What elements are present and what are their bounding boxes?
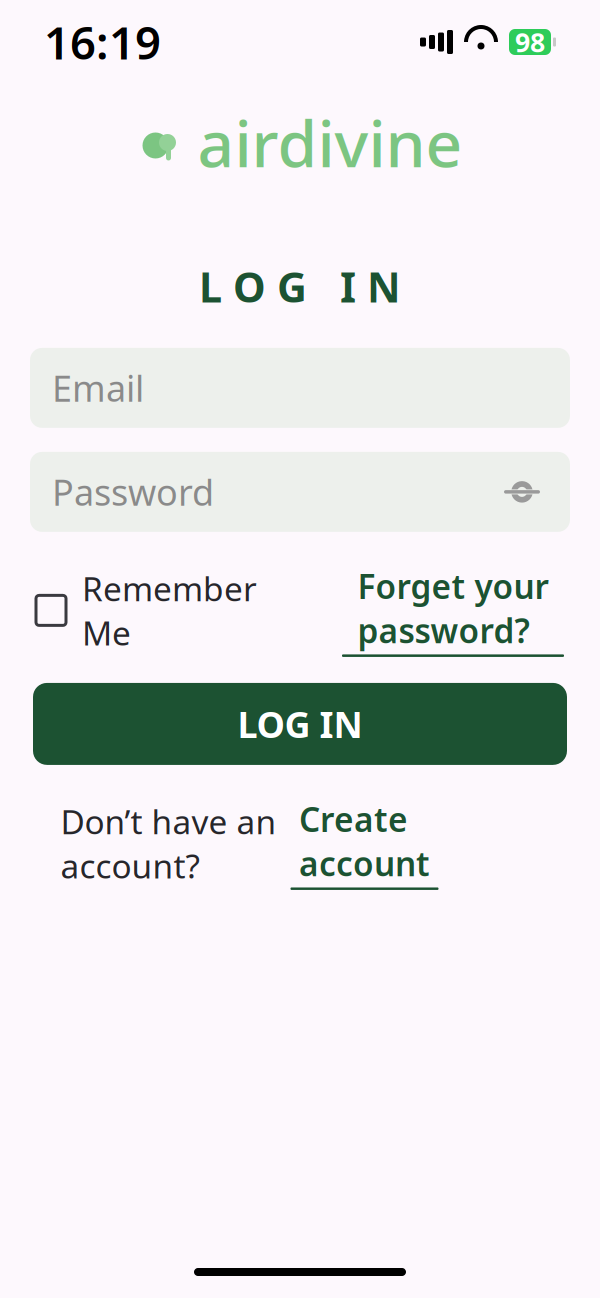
staticText: Email bbox=[52, 364, 144, 412]
staticText: 98 bbox=[515, 24, 545, 60]
staticText: L O G I N bbox=[199, 259, 401, 314]
button[interactable]: LOG IN bbox=[33, 683, 567, 765]
staticText: Forget your password? bbox=[357, 564, 548, 652]
staticText: Remember Me bbox=[82, 566, 257, 655]
button[interactable]: Remember Me bbox=[36, 566, 257, 655]
staticText: Don’t have an account? bbox=[60, 799, 276, 888]
staticText: airdivine bbox=[197, 100, 462, 185]
staticText: 16:19 bbox=[44, 12, 161, 72]
button[interactable]: Create account bbox=[290, 797, 438, 890]
button[interactable]: Forget your password? bbox=[342, 564, 564, 657]
staticText: LOG IN bbox=[237, 700, 362, 748]
button[interactable]: Show password bbox=[496, 466, 548, 518]
staticText: Password bbox=[52, 468, 214, 516]
staticText: Create account bbox=[299, 797, 430, 885]
